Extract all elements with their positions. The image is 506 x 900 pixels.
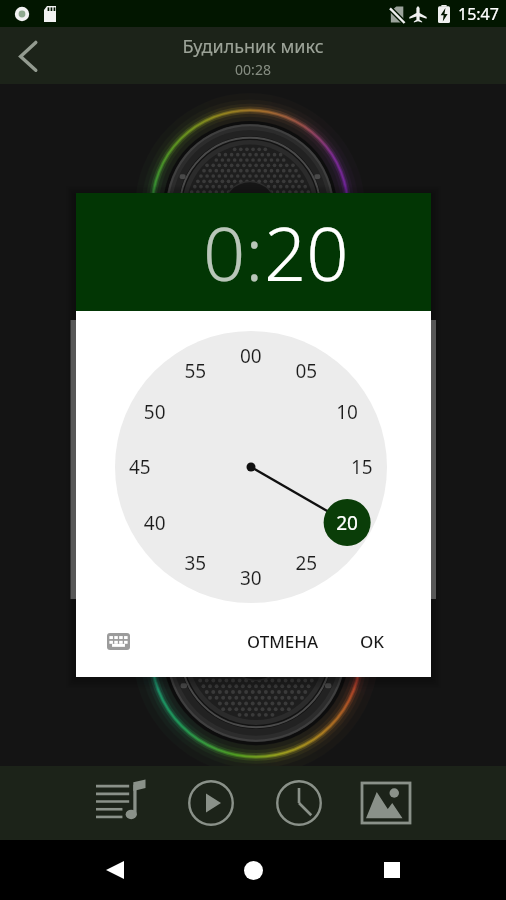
button[interactable]: ОТМЕНА [235,620,331,663]
button[interactable]: Play [179,771,243,835]
staticText: 20 [264,202,349,303]
staticText: OK [360,630,385,653]
staticText: Будильник микс [182,34,324,59]
staticText: 0: [203,202,264,303]
button[interactable]: Home [229,846,277,894]
button[interactable]: Recents [368,846,416,894]
button[interactable]: Switch to keyboard input [96,619,140,663]
button[interactable]: Playlist [89,771,153,835]
button[interactable]: Timer [267,771,331,835]
staticText: 00:28 [235,60,271,79]
button[interactable]: Images [354,771,418,835]
staticText: 15:47 [458,3,499,25]
button[interactable]: OK [348,620,397,663]
button[interactable]: Back [0,27,57,84]
staticText: ОТМЕНА [247,630,319,653]
button[interactable]: Back [91,846,139,894]
